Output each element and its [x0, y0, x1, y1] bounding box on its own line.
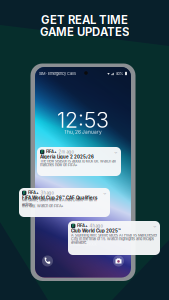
staticText: 3h ago — [41, 190, 54, 195]
staticText: City in the final of 15. Watch highlight… — [71, 236, 154, 241]
staticText: FIFA+ — [28, 190, 39, 195]
staticText: 4h ago — [90, 223, 103, 228]
staticText: this day. Watch on FIFA+ — [22, 203, 64, 208]
staticText: 12:53 — [57, 107, 109, 133]
staticText: F — [41, 149, 43, 154]
button[interactable]: F — [68, 221, 160, 255]
staticText: ⌄ — [114, 149, 118, 155]
staticText: The new season is about to kick off. Wat… — [40, 159, 116, 163]
staticText: matches now on FIFA+ — [40, 162, 78, 167]
staticText: available. — [71, 240, 87, 245]
staticText: GAME UPDATES — [40, 25, 129, 39]
button[interactable]: F — [37, 147, 121, 176]
staticText: 40% — [116, 71, 124, 76]
staticText: GET REAL TIME — [41, 13, 128, 27]
staticText: ⌄ — [153, 223, 157, 229]
button[interactable]: F — [19, 188, 110, 217]
staticText: 2m ago — [59, 149, 74, 154]
staticText: SIM · Emergency Calls — [39, 71, 76, 76]
staticText: ⌄ — [103, 190, 107, 196]
staticText: Mo Salah, Sadio Mane & Amad Diallo — all… — [22, 198, 97, 207]
staticText: Algeria Ligue 2 2025/26 — [40, 154, 94, 159]
staticText: Swipe to unlock — [69, 241, 96, 246]
staticText: Club World Cup 2025™ — [71, 228, 121, 233]
staticText: FIFA+ — [46, 149, 57, 154]
button[interactable]: Camera — [113, 255, 124, 266]
staticText: F — [72, 223, 74, 228]
staticText: A stunning win: Shiffle races Al Hilal v… — [71, 233, 157, 237]
staticText: F — [23, 190, 25, 195]
staticText: FIFA+ — [77, 223, 88, 228]
button[interactable]: Phone — [42, 255, 53, 266]
staticText: FIFA World Cup 26™ CAF Qualifiers — [22, 195, 97, 200]
staticText: Thu, 26 January — [64, 129, 102, 135]
